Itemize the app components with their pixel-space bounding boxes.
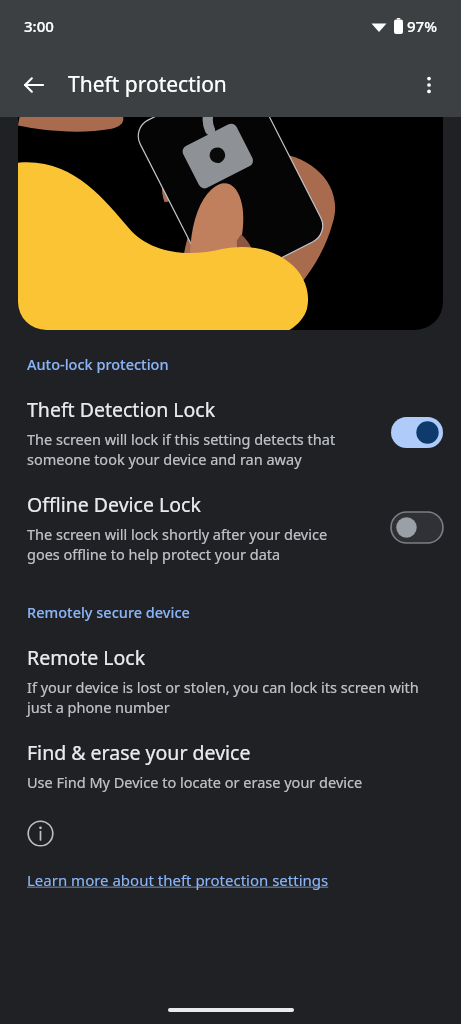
staticText: Find & erase your device [27, 739, 251, 766]
staticText: 97% [407, 16, 437, 36]
staticText: Use Find My Device to locate or erase yo… [27, 772, 363, 792]
staticText: The screen will lock if this setting det… [27, 429, 336, 469]
other: On [391, 417, 443, 448]
button[interactable]: Offline Device Lock [0, 491, 461, 564]
staticText: Remote Lock [27, 644, 146, 671]
button[interactable]: Find & erase your device [0, 739, 461, 792]
button[interactable]: Back [10, 61, 58, 109]
staticText: The screen will lock shortly after your … [27, 524, 328, 564]
staticText: Learn more about theft protection settin… [27, 870, 329, 890]
button[interactable]: More options [405, 61, 453, 109]
staticText: Auto-lock protection [27, 354, 169, 374]
button[interactable]: Theft Detection Lock [0, 396, 461, 469]
other: Off [391, 512, 443, 543]
staticText: 3:00 [24, 16, 54, 36]
staticText: Theft Detection Lock [27, 396, 216, 423]
button[interactable]: Remote Lock [0, 644, 461, 717]
staticText: Offline Device Lock [27, 491, 201, 518]
staticText: Theft protection [68, 70, 227, 99]
button[interactable]: Learn more about theft protection settin… [27, 870, 329, 890]
staticText: If your device is lost or stolen, you ca… [27, 677, 419, 717]
staticText: Remotely secure device [27, 602, 190, 622]
